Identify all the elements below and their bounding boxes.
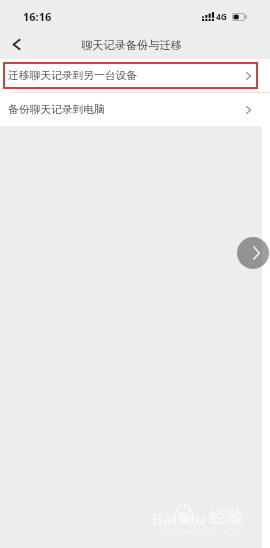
button[interactable]: 备份聊天记录到电脑 — [0, 93, 270, 126]
staticText: 迁移聊天记录到另一台设备 — [8, 69, 137, 83]
staticText: 聊天记录备份与迁移 — [81, 38, 182, 52]
button[interactable]: Next — [237, 237, 269, 269]
button[interactable]: 迁移聊天记录到另一台设备 — [0, 59, 270, 92]
staticText: 备份聊天记录到电脑 — [8, 103, 105, 117]
staticText: Bai — [152, 508, 178, 530]
staticText: 4G — [216, 11, 227, 22]
button[interactable]: Back — [0, 28, 33, 59]
staticText: 经验 — [209, 507, 243, 528]
staticText: du — [185, 508, 206, 530]
staticText: 16:16 — [23, 9, 52, 24]
